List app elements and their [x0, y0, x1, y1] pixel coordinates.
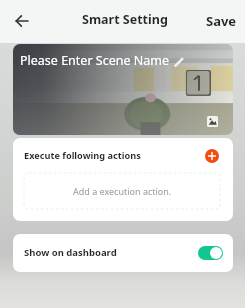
staticText: Execute following actions	[24, 149, 141, 162]
button[interactable]: Add a execution action.	[24, 173, 220, 209]
button[interactable]: Add action	[205, 149, 219, 163]
button[interactable]: Change scene image	[207, 116, 218, 127]
staticText: Show on dashboard	[24, 246, 117, 259]
button[interactable]: Show on dashboard	[13, 234, 233, 272]
staticText: Smart Setting	[82, 11, 168, 28]
button[interactable]: Please Enter Scene Name	[13, 44, 233, 135]
staticText: Save	[206, 12, 237, 30]
staticText: Add a execution action.	[73, 185, 172, 197]
staticText: Please Enter Scene Name	[20, 52, 169, 69]
button[interactable]: Back	[1, 0, 43, 42]
button[interactable]: Save	[194, 0, 245, 40]
button[interactable]: Show on dashboard toggle	[198, 246, 223, 260]
